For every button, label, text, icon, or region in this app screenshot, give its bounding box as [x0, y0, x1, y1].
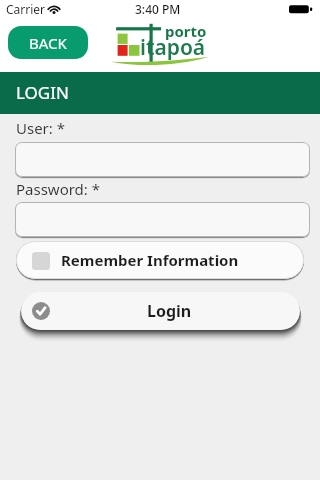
button[interactable] — [15, 202, 310, 237]
button[interactable] — [15, 142, 310, 177]
staticText: LOGIN — [16, 81, 69, 104]
staticText: Login — [147, 300, 192, 322]
button[interactable]: Submit — [21, 292, 300, 330]
other: Submit — [32, 302, 50, 320]
staticText: 3:40 PM — [135, 1, 181, 17]
staticText: User: * — [16, 118, 65, 138]
staticText: porto — [165, 21, 207, 41]
staticText: Password: * — [16, 179, 101, 199]
button[interactable]: Remember Information — [16, 241, 304, 279]
staticText: itapoá — [140, 33, 206, 62]
staticText: Carrier — [6, 1, 46, 17]
staticText: BACK — [29, 33, 67, 53]
staticText: Remember Information — [61, 250, 239, 270]
button[interactable]: BACK — [8, 26, 88, 59]
